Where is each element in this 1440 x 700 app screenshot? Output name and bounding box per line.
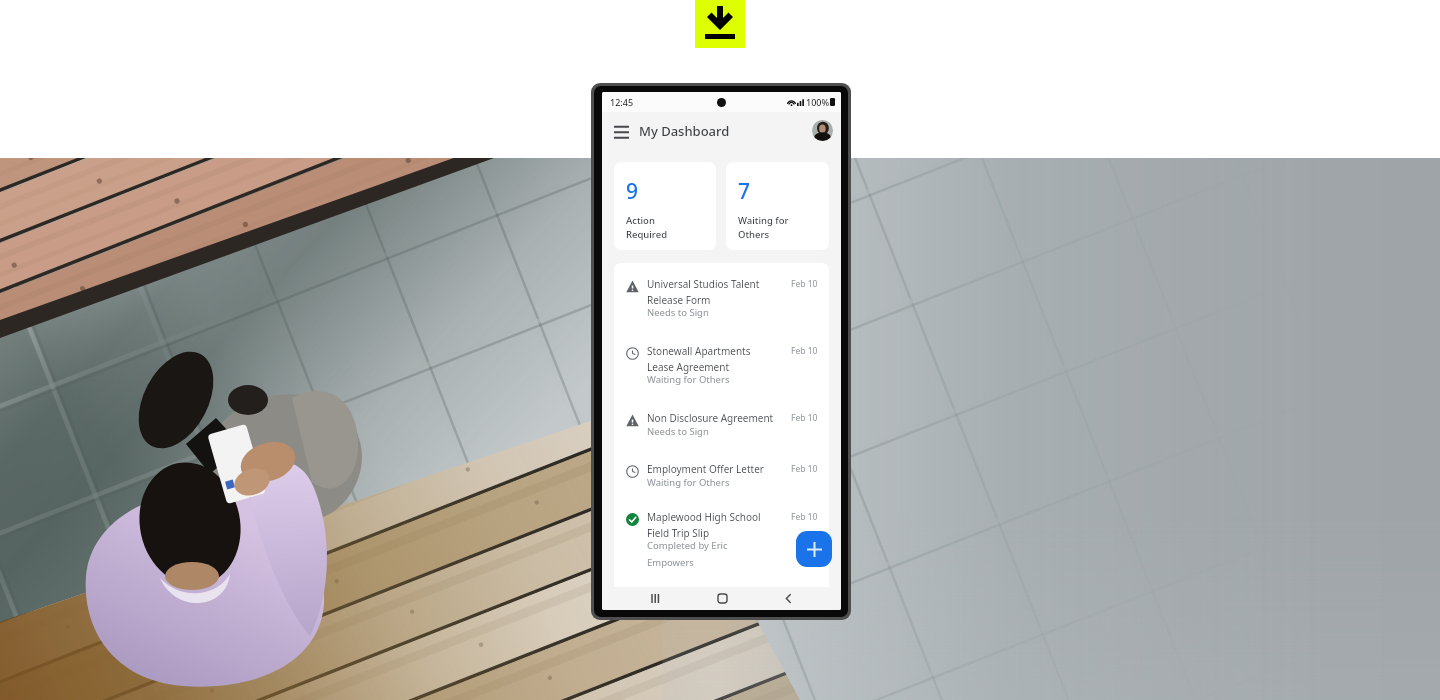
button[interactable]: Universal Studios Talent Release Form xyxy=(614,277,829,319)
staticText: Employment Offer Letter xyxy=(647,462,764,476)
button[interactable]: Maplewood High School Field Trip Slip xyxy=(614,510,829,568)
button[interactable]: 9 xyxy=(614,162,716,250)
button[interactable]: Recent apps xyxy=(641,587,669,610)
staticText: Universal Studios Talent Release Form xyxy=(647,277,760,306)
staticText: Feb 10 xyxy=(791,278,818,290)
button[interactable]: Menu xyxy=(610,120,632,142)
staticText: 12:45 xyxy=(610,96,634,108)
staticText: Needs to Sign xyxy=(647,425,709,438)
staticText: Non Disclosure Agreement xyxy=(647,411,774,425)
button[interactable]: Home xyxy=(708,587,736,610)
button[interactable]: Download xyxy=(695,0,745,48)
button[interactable]: Profile xyxy=(812,120,833,141)
staticText: 7 xyxy=(738,177,751,206)
button[interactable]: Back xyxy=(774,587,802,610)
staticText: Stonewall Apartments Lease Agreement xyxy=(647,344,751,373)
staticText: Feb 10 xyxy=(791,412,818,424)
staticText: My Dashboard xyxy=(639,122,730,140)
button[interactable]: Stonewall Apartments Lease Agreement xyxy=(614,344,829,386)
staticText: 9 xyxy=(626,177,639,206)
button[interactable]: Employment Offer Letter xyxy=(614,462,829,489)
staticText: Action Required xyxy=(626,214,668,240)
button[interactable]: 7 xyxy=(726,162,829,250)
staticText: Waiting for Others xyxy=(647,373,730,386)
staticText: Waiting for Others xyxy=(647,476,730,489)
staticText: Maplewood High School Field Trip Slip xyxy=(647,510,761,539)
staticText: Completed by Eric Empowers xyxy=(647,539,728,568)
staticText: Waiting for Others xyxy=(738,214,789,240)
button[interactable]: Create new document xyxy=(796,531,832,567)
button[interactable]: Non Disclosure Agreement xyxy=(614,411,829,438)
staticText: Feb 10 xyxy=(791,345,818,357)
staticText: 100% xyxy=(806,96,830,108)
staticText: Needs to Sign xyxy=(647,306,709,319)
staticText: Feb 10 xyxy=(791,463,818,475)
staticText: Feb 10 xyxy=(791,511,818,523)
